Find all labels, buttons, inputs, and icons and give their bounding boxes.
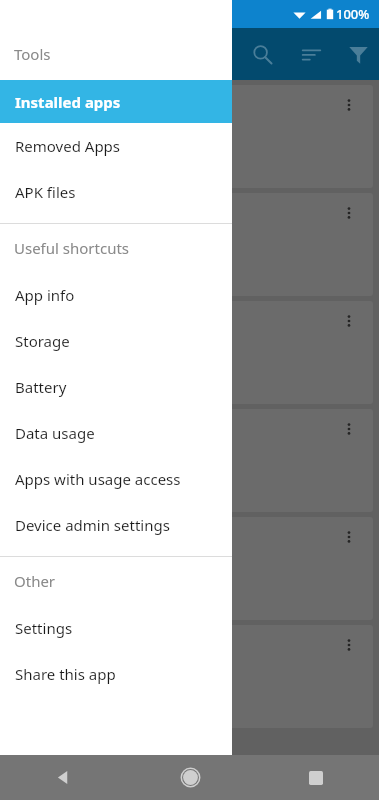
button[interactable]: ne, date [6, 625, 373, 728]
button[interactable]: Apps with usage access [0, 456, 232, 502]
button[interactable]: More options [333, 89, 365, 121]
button[interactable]: Data usage [0, 410, 232, 456]
staticText: Data usage [15, 423, 95, 443]
button[interactable]: Removed Apps [0, 123, 232, 169]
staticText: version code: [16, 136, 104, 155]
button[interactable]: tion.puzzle, [6, 409, 373, 512]
button[interactable]: App info [0, 272, 232, 318]
staticText: Share this app [15, 664, 116, 684]
staticText: Storage [15, 331, 70, 351]
button[interactable]: k.fruitninjax, [6, 193, 373, 296]
staticText: Settings [15, 618, 73, 638]
staticText: 100% [336, 5, 370, 23]
button[interactable]: Settings [0, 605, 232, 651]
staticText: k.fruitninjax, [16, 221, 99, 240]
staticText: version code: [16, 244, 104, 263]
staticText: tion.puzzle, [16, 437, 92, 456]
staticText: on code: [16, 676, 73, 695]
staticText: Useful shortcuts [14, 238, 130, 258]
button[interactable]: More options [333, 197, 365, 229]
staticText: Battery [15, 377, 67, 397]
staticText: version code: [16, 460, 104, 479]
staticText: Apps with usage access [15, 469, 181, 489]
button[interactable]: Installed apps [0, 80, 232, 123]
staticText: ne, date [16, 653, 70, 672]
button[interactable]: Filter [338, 32, 379, 76]
button[interactable]: More options [333, 629, 365, 661]
button[interactable]: Storage [0, 318, 232, 364]
staticText: nd.badland, [16, 113, 95, 132]
staticText: 27121, version [16, 568, 112, 587]
button[interactable]: Home [127, 755, 253, 800]
staticText: Other [14, 571, 56, 591]
staticText: App info [15, 285, 75, 305]
staticText: , date installed: [16, 545, 116, 564]
staticText: Installed apps [15, 92, 121, 112]
staticText: Tools [14, 44, 51, 64]
button[interactable]: Device admin settings [0, 502, 232, 548]
button[interactable]: Sort [289, 32, 333, 76]
button[interactable]: Back [0, 755, 127, 800]
staticText: Device admin settings [15, 515, 170, 535]
button[interactable]: More options [333, 305, 365, 337]
button[interactable]: Share this app [0, 651, 232, 697]
button[interactable]: Recents [253, 755, 379, 800]
button[interactable]: Search [240, 32, 284, 76]
button[interactable]: Battery [0, 364, 232, 410]
button[interactable]: nd.badland, [6, 85, 373, 188]
staticText: e: 169 MB [16, 375, 81, 394]
button[interactable]: More options [333, 521, 365, 553]
button[interactable]: APK files [0, 169, 232, 215]
staticText: p size: 142 MB [16, 483, 110, 502]
button[interactable]: , date installed: [6, 517, 373, 620]
button[interactable]: More options [333, 413, 365, 445]
button[interactable]: b.evopop, date [6, 301, 373, 404]
staticText: Removed Apps [15, 136, 121, 156]
staticText: APK files [15, 182, 76, 202]
staticText: b.evopop, date [16, 329, 115, 348]
